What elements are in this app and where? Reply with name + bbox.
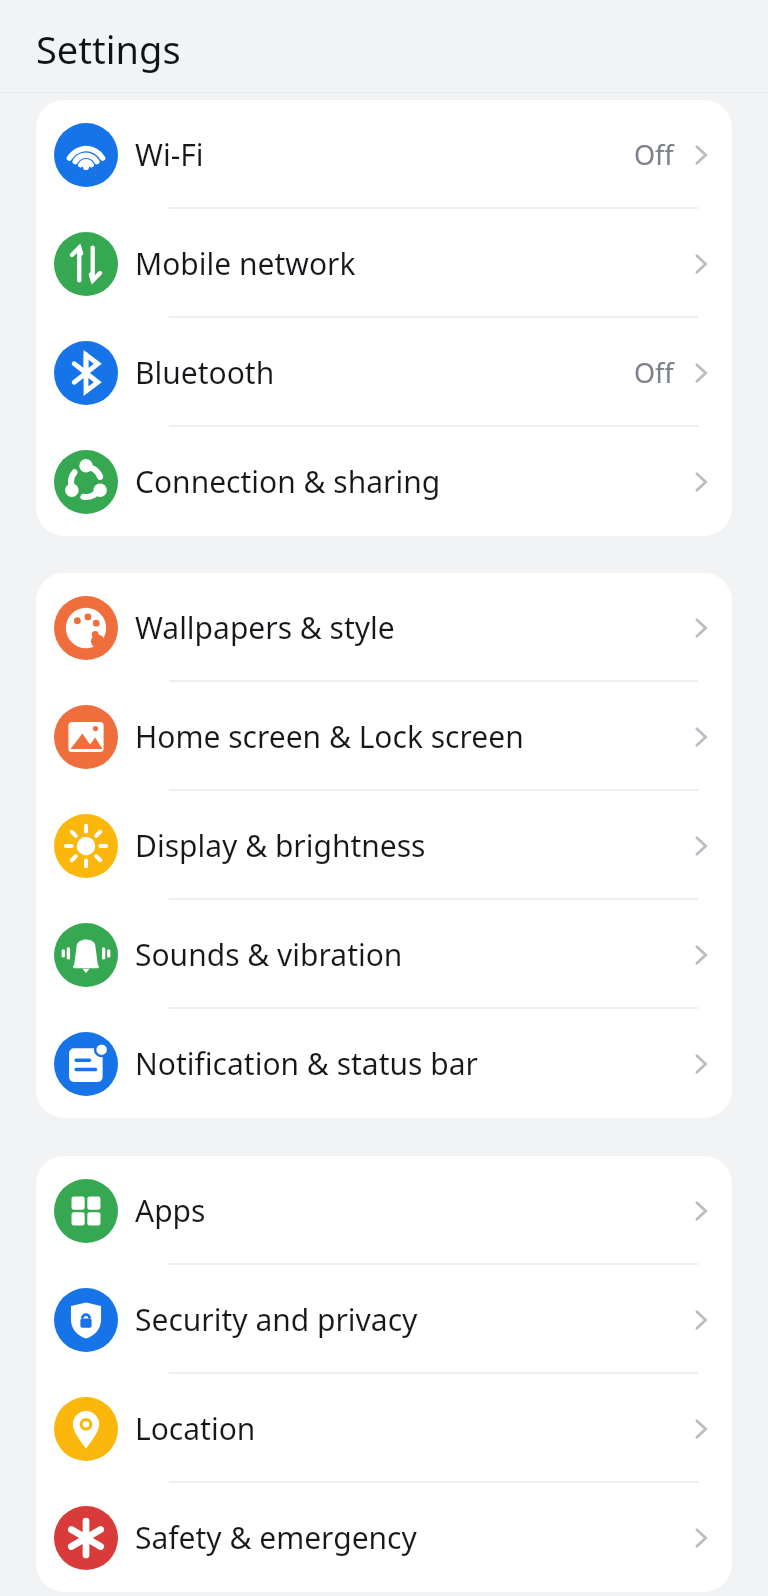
button[interactable]: Display & brightness <box>36 791 732 900</box>
button[interactable]: Connection & sharing <box>36 427 732 536</box>
button[interactable]: Mobile network <box>36 209 732 318</box>
staticText: Display & brightness <box>135 825 688 866</box>
staticText: Bluetooth <box>135 352 634 393</box>
staticText: Off <box>634 136 674 173</box>
staticText: Notification & status bar <box>135 1043 688 1084</box>
staticText: Wi-Fi <box>135 134 634 175</box>
button[interactable]: Sounds & vibration <box>36 900 732 1009</box>
staticText: Location <box>135 1408 688 1449</box>
button[interactable]: Security and privacy <box>36 1265 732 1374</box>
staticText: Off <box>634 354 674 391</box>
staticText: Connection & sharing <box>135 461 688 502</box>
staticText: Safety & emergency <box>135 1517 688 1558</box>
button[interactable]: Bluetooth <box>36 318 732 427</box>
button[interactable]: Location <box>36 1374 732 1483</box>
button[interactable]: Wallpapers & style <box>36 573 732 682</box>
button[interactable]: Wi-Fi <box>36 100 732 209</box>
button[interactable]: Notification & status bar <box>36 1009 732 1118</box>
button[interactable]: Home screen & Lock screen <box>36 682 732 791</box>
staticText: Sounds & vibration <box>135 934 688 975</box>
button[interactable]: Safety & emergency <box>36 1483 732 1592</box>
staticText: Wallpapers & style <box>135 607 688 648</box>
staticText: Apps <box>135 1190 688 1231</box>
staticText: Settings <box>36 23 181 75</box>
staticText: Home screen & Lock screen <box>135 716 688 757</box>
staticText: Mobile network <box>135 243 688 284</box>
staticText: Security and privacy <box>135 1299 688 1340</box>
button[interactable]: Apps <box>36 1156 732 1265</box>
